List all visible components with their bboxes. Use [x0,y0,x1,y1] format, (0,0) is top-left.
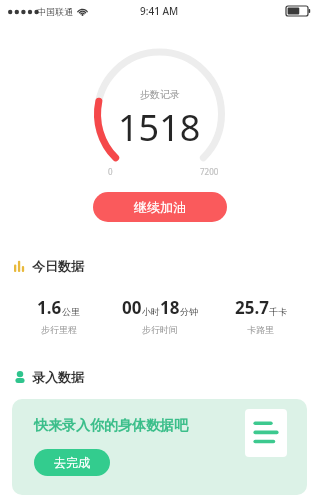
staticText: 继续加油 [134,199,186,215]
staticText: 1518 [118,103,201,152]
staticText: 千卡 [269,306,287,317]
staticText: 卡路里 [247,324,274,335]
button[interactable]: 继续加油 [93,192,227,222]
button[interactable]: 去完成 [34,449,110,476]
staticText: 7200 [200,166,219,177]
staticText: 去完成 [54,455,90,470]
staticText: 18 [160,296,180,319]
staticText: 分钟 [180,306,198,317]
staticText: 快来录入你的身体数据吧 [34,417,188,435]
staticText: 录入数据 [32,369,84,385]
staticText: 1.6 [37,296,62,319]
other: Body data form [245,409,287,457]
button[interactable]: 快来录入你的身体数据吧 [12,399,307,495]
staticText: 步行时间 [142,324,178,335]
staticText: 步数记录 [140,88,180,101]
staticText: 0 [108,166,113,177]
staticText: 步行里程 [41,324,77,335]
staticText: 公里 [62,306,80,317]
staticText: 小时 [142,306,160,317]
staticText: 中国联通 [37,6,73,17]
staticText: 00 [122,296,142,319]
staticText: 9:41 AM [140,4,179,18]
staticText: 今日数据 [32,258,84,274]
staticText: 25.7 [235,296,269,319]
